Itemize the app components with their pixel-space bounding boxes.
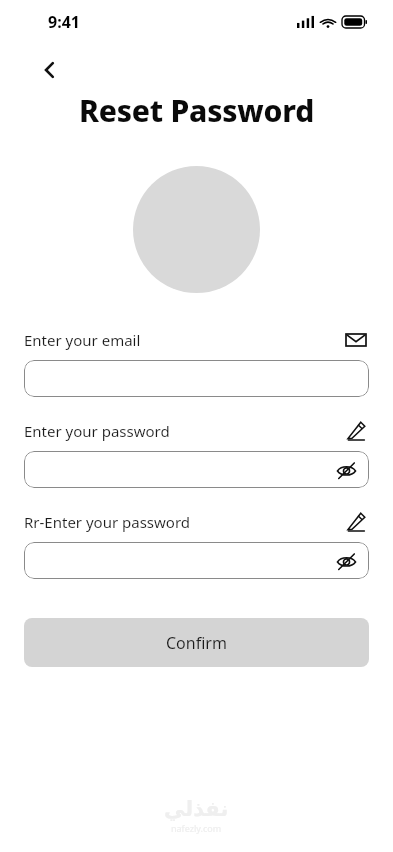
button[interactable]: Show password <box>24 542 369 579</box>
button[interactable]: Show password <box>333 457 359 483</box>
staticText: 9:41 <box>48 11 80 33</box>
staticText: Enter your email <box>24 330 141 350</box>
button[interactable]: Edit <box>343 509 369 535</box>
button[interactable]: Edit <box>343 418 369 444</box>
button[interactable] <box>24 360 369 397</box>
staticText: نفذلي <box>164 797 229 821</box>
button[interactable]: Email <box>343 327 369 353</box>
button[interactable]: Show password <box>333 548 359 574</box>
staticText: nafezly.com <box>171 822 222 834</box>
staticText: Reset Password <box>0 90 393 131</box>
staticText: Enter your password <box>24 421 170 441</box>
button[interactable]: Show password <box>24 451 369 488</box>
staticText: Confirm <box>166 632 227 654</box>
button[interactable]: Confirm <box>24 618 369 667</box>
button[interactable]: Profile photo <box>133 166 260 293</box>
button[interactable]: Back <box>36 56 64 84</box>
staticText: Rr-Enter your password <box>24 512 191 532</box>
